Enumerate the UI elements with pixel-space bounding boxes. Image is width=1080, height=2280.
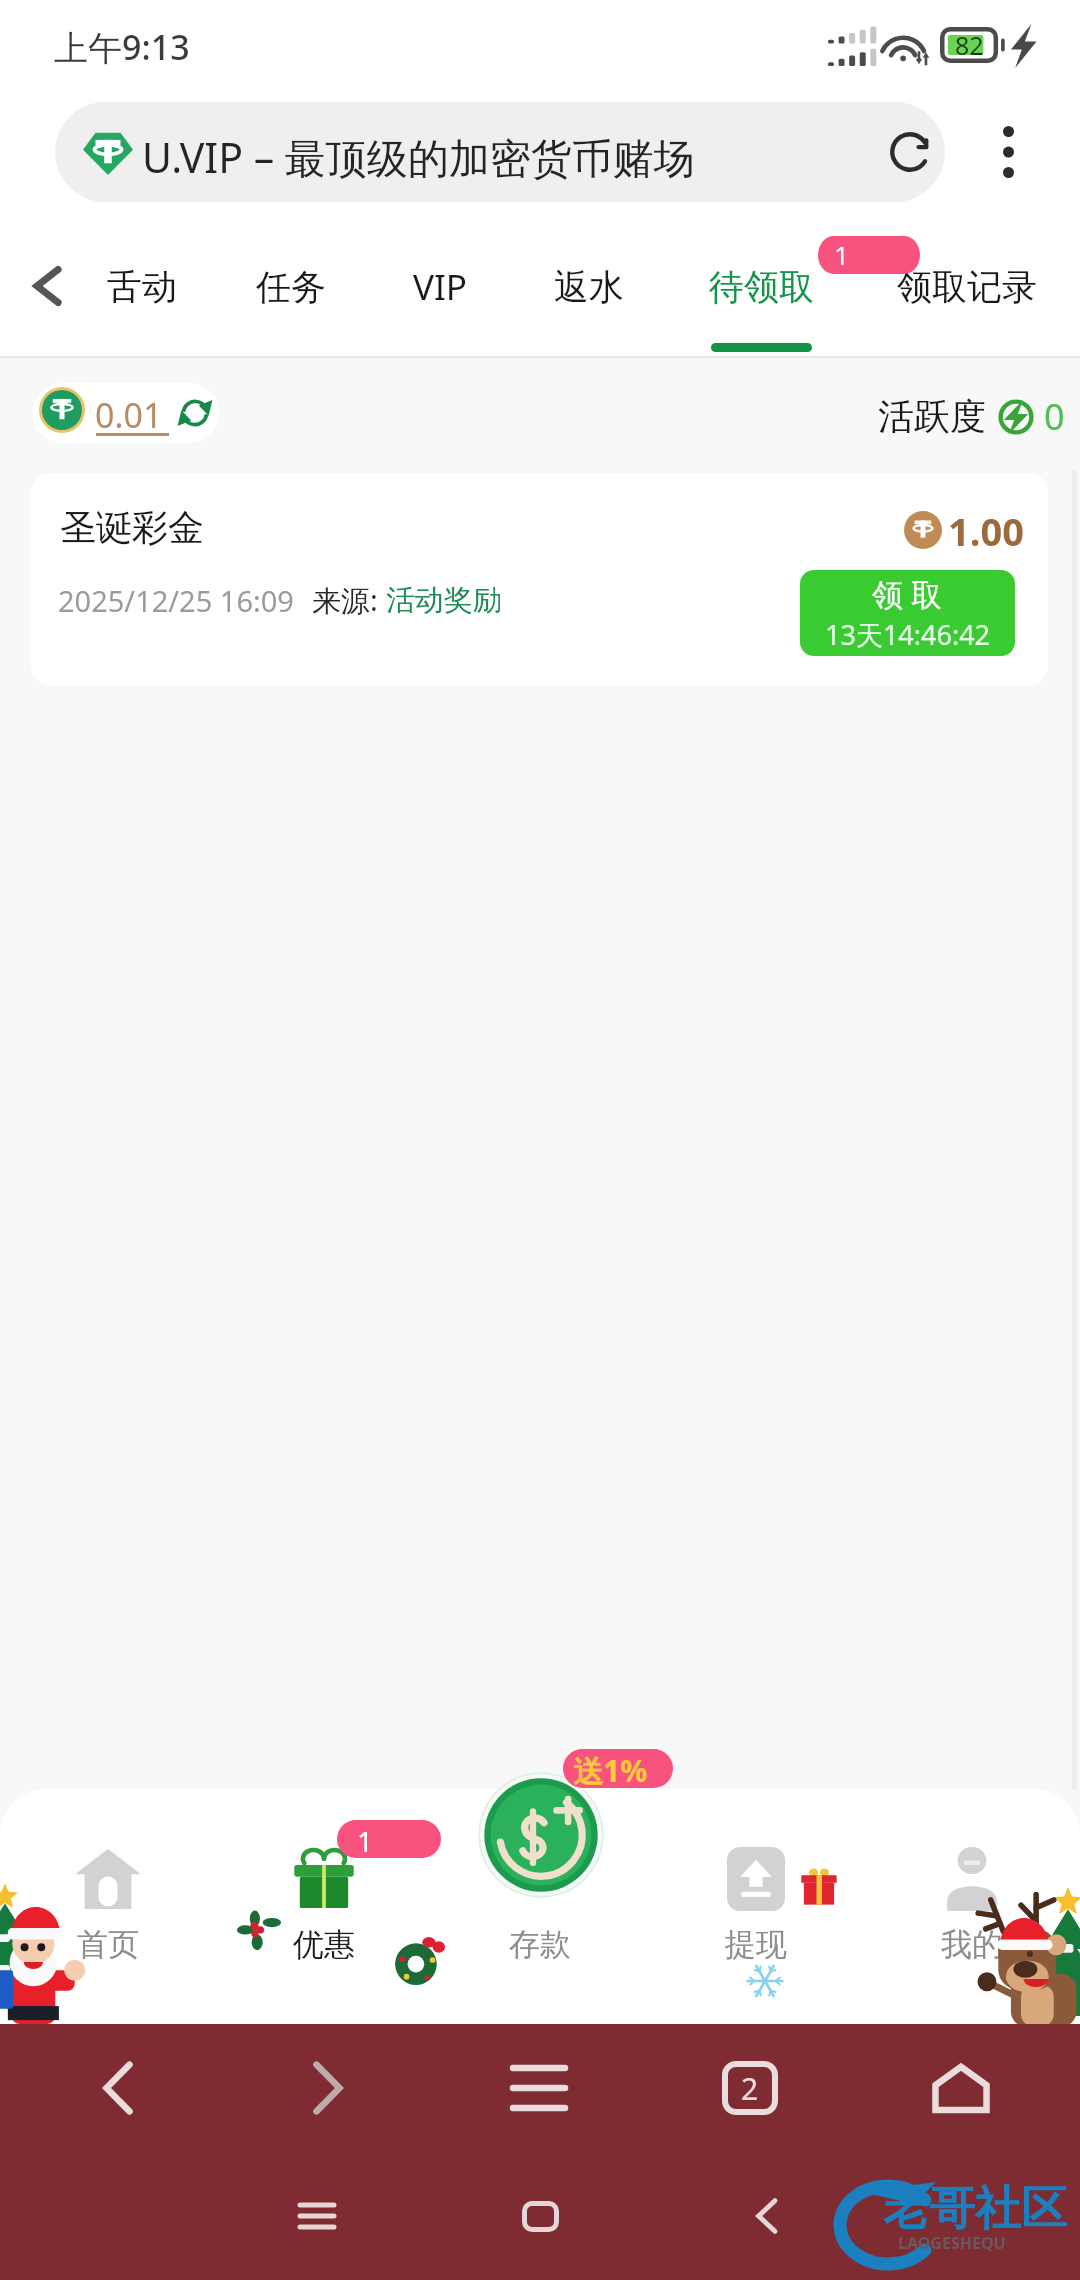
button[interactable]: 返水 — [529, 215, 649, 357]
staticText: 2025/12/25 16:09 — [58, 581, 294, 620]
button[interactable]: 领 取 — [800, 570, 1015, 656]
staticText: 送1% — [573, 1750, 648, 1788]
button[interactable]: 存款 — [478, 1772, 604, 1898]
button[interactable]: Menu — [474, 2024, 604, 2152]
staticText: 提现 — [725, 1925, 787, 1964]
staticText: 82 — [955, 28, 984, 62]
staticText: 活跃度 — [878, 394, 986, 439]
button[interactable]: 0.01 — [33, 383, 219, 443]
staticText: 领 取 — [872, 573, 943, 615]
button[interactable]: 首页 — [0, 1789, 216, 2024]
button[interactable]: Home — [896, 2024, 1026, 2152]
staticText: LAOGESHEQU — [898, 2232, 1006, 2254]
button[interactable]: 提现 — [648, 1789, 864, 2024]
staticText: 优惠 — [293, 1925, 355, 1964]
button[interactable]: Forward — [263, 2024, 393, 2152]
button[interactable]: Home — [480, 2156, 600, 2276]
staticText: 上午9:13 — [54, 24, 190, 70]
staticText: 1 — [357, 1822, 374, 1858]
button[interactable]: 待领取 — [691, 215, 831, 357]
staticText: U.VIP – 最顶级的加密货币赌场 — [142, 129, 695, 185]
staticText: 我的 — [941, 1925, 1003, 1964]
staticText: 2 — [741, 2068, 759, 2109]
staticText: 返水 — [554, 265, 624, 309]
button[interactable]: 舌动 — [82, 215, 202, 357]
button[interactable]: 领取记录 — [877, 215, 1057, 357]
staticText: 领取记录 — [897, 265, 1037, 309]
button[interactable]: 优惠 — [216, 1789, 432, 2024]
button[interactable]: More options — [968, 102, 1048, 202]
staticText: 任务 — [256, 265, 326, 309]
button[interactable]: 圣诞彩金 — [31, 473, 1048, 685]
staticText: 0.01 — [95, 392, 163, 438]
staticText: 舌动 — [107, 265, 177, 309]
button[interactable]: U.VIP – 最顶级的加密货币赌场 — [55, 102, 945, 202]
staticText: 0 — [1044, 392, 1065, 441]
staticText: 首页 — [77, 1925, 139, 1964]
button[interactable]: 任务 — [231, 215, 351, 357]
staticText: VIP — [413, 263, 468, 311]
staticText: 圣诞彩金 — [60, 505, 204, 550]
staticText: 存款 — [509, 1925, 571, 1964]
button[interactable]: 存款 — [432, 1789, 648, 2024]
staticText: 1.00 — [948, 505, 1024, 557]
staticText: 待领取 — [709, 265, 814, 309]
staticText: 活动奖励 — [386, 582, 502, 619]
button[interactable]: 我的 — [864, 1789, 1080, 2024]
button[interactable]: Back — [53, 2024, 183, 2152]
staticText: 来源: — [312, 580, 386, 620]
staticText: 1 — [834, 237, 849, 272]
button[interactable]: Tabs — [685, 2024, 815, 2152]
button[interactable]: VIP — [380, 215, 500, 357]
button[interactable]: Back — [707, 2156, 827, 2276]
button[interactable]: Reload — [875, 102, 945, 202]
button[interactable]: 活跃度 — [878, 390, 1065, 442]
staticText: 老哥社区 — [883, 2180, 1067, 2238]
button[interactable]: Back — [2, 215, 94, 357]
staticText: 13天14:46:42 — [825, 616, 991, 653]
button[interactable]: Recents — [257, 2156, 377, 2276]
